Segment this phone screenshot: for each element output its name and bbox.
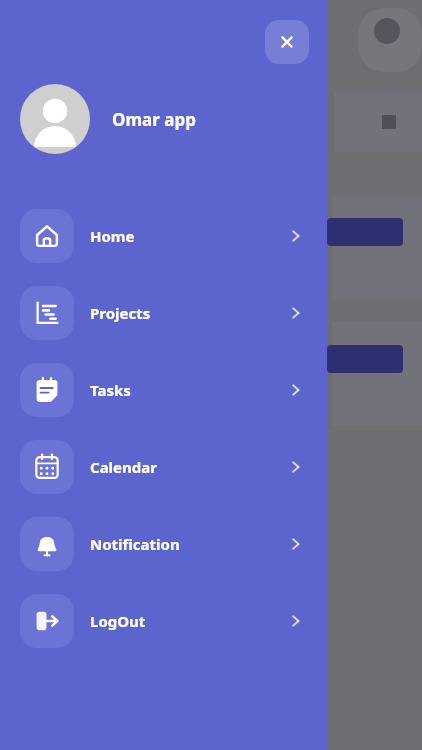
staticText: Tasks — [90, 380, 287, 400]
staticText: Omar app — [112, 108, 196, 131]
staticText: LogOut — [90, 611, 287, 631]
staticText: Projects — [90, 303, 287, 323]
button[interactable]: Tasks — [0, 351, 327, 428]
button[interactable]: LogOut — [0, 582, 327, 659]
button[interactable]: Home — [0, 197, 327, 274]
button[interactable]: Notification — [0, 505, 327, 582]
staticText: Home — [90, 226, 287, 246]
button[interactable]: Projects — [0, 274, 327, 351]
staticText: Calendar — [90, 457, 287, 477]
button[interactable]: Calendar — [0, 428, 327, 505]
staticText: Notification — [90, 534, 287, 554]
button[interactable]: Close — [265, 20, 309, 64]
button[interactable]: Omar app — [20, 84, 307, 154]
